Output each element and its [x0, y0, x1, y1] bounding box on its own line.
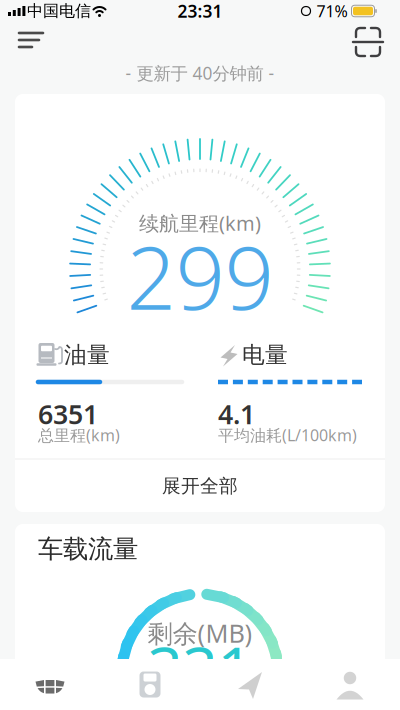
staticText: 4.1	[218, 396, 255, 432]
button[interactable]: Scan	[350, 24, 386, 60]
staticText: - 更新于 40分钟前 -	[125, 61, 274, 84]
button[interactable]: 展开全部	[15, 465, 385, 507]
staticText: 中国电信	[27, 1, 91, 21]
staticText: 总里程(km)	[38, 424, 120, 446]
button[interactable]: Charging	[101, 659, 199, 710]
staticText: 299	[126, 218, 273, 334]
button[interactable]: Profile	[301, 659, 399, 710]
staticText: 电量	[242, 341, 288, 369]
button[interactable]: Location	[201, 659, 299, 710]
button[interactable]: Menu	[9, 26, 53, 54]
button[interactable]: Home	[1, 659, 99, 710]
staticText: 331	[147, 627, 252, 709]
staticText: 展开全部	[162, 474, 238, 497]
staticText: 油量	[64, 341, 110, 369]
staticText: 71%	[316, 0, 347, 22]
staticText: 续航里程(km)	[139, 210, 261, 236]
staticText: 车载流量	[38, 533, 138, 564]
staticText: 6351	[38, 396, 98, 432]
staticText: 剩余(MB)	[147, 616, 252, 650]
staticText: 23:31	[177, 0, 222, 22]
staticText: 平均油耗(L/100km)	[218, 424, 357, 446]
